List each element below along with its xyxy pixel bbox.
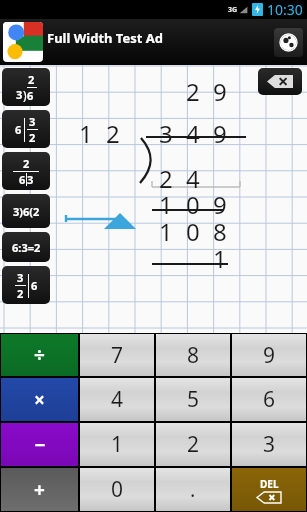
staticText: 7 bbox=[111, 341, 124, 370]
staticText: 3 bbox=[159, 117, 173, 150]
staticText: 1 bbox=[79, 117, 93, 150]
button[interactable]: Division style colon bbox=[2, 232, 50, 262]
staticText: 6:3=2 bbox=[12, 240, 41, 255]
button[interactable]: 8 bbox=[156, 334, 230, 376]
staticText: 4 bbox=[186, 117, 200, 150]
button[interactable]: 2 bbox=[156, 423, 230, 466]
staticText: 4 bbox=[111, 385, 124, 414]
staticText: ÷ bbox=[34, 342, 45, 368]
button[interactable]: operator ÷ bbox=[1, 334, 78, 376]
staticText: 3 bbox=[29, 114, 36, 129]
staticText: 8 bbox=[187, 341, 200, 370]
staticText: . bbox=[190, 476, 196, 503]
button[interactable]: 7 bbox=[80, 334, 154, 376]
button[interactable]: Open ad bbox=[274, 28, 303, 57]
button[interactable]: 5 bbox=[156, 378, 230, 421]
staticText: 3 bbox=[27, 172, 34, 187]
staticText: 2 bbox=[28, 72, 35, 87]
button[interactable]: 6 bbox=[232, 378, 306, 421]
staticText: Full Width Test Ad bbox=[47, 29, 163, 47]
button[interactable]: Division style bracket bbox=[2, 68, 50, 106]
staticText: 2 bbox=[17, 286, 24, 301]
staticText: 10:30 bbox=[267, 0, 303, 19]
staticText: 3 bbox=[263, 430, 276, 459]
staticText: 3G bbox=[228, 5, 238, 15]
staticText: 1 bbox=[213, 242, 227, 275]
staticText: 9 bbox=[213, 188, 227, 221]
staticText: 0 bbox=[111, 475, 124, 504]
button[interactable]: . bbox=[156, 468, 230, 511]
staticText: 2 bbox=[159, 162, 173, 195]
staticText: 8 bbox=[213, 215, 227, 248]
staticText: 9 bbox=[263, 341, 276, 370]
staticText: × bbox=[34, 387, 45, 413]
staticText: 6 bbox=[27, 88, 34, 103]
staticText: 9 bbox=[213, 75, 227, 108]
button[interactable]: Division style stacked bbox=[2, 152, 50, 190]
button[interactable]: Division style bar right bbox=[2, 110, 50, 148]
staticText: 9 bbox=[213, 117, 227, 150]
button[interactable]: 0 bbox=[80, 468, 154, 511]
staticText: 0 bbox=[186, 188, 200, 221]
staticText: 1 bbox=[111, 430, 124, 459]
staticText: 5 bbox=[187, 385, 200, 414]
button[interactable]: operator × bbox=[1, 378, 78, 421]
staticText: 1 bbox=[159, 188, 173, 221]
staticText: 2 bbox=[23, 156, 30, 171]
button[interactable]: Division style parenthesis bbox=[2, 194, 50, 228]
button[interactable]: Division style bar left bbox=[2, 266, 50, 304]
staticText: 6 bbox=[15, 122, 22, 137]
staticText: 6 bbox=[31, 278, 38, 293]
staticText: − bbox=[34, 432, 46, 458]
button[interactable]: 1 bbox=[80, 423, 154, 466]
button[interactable]: 9 bbox=[232, 334, 306, 376]
staticText: 3 bbox=[17, 270, 24, 285]
button[interactable]: 3 bbox=[232, 423, 306, 466]
staticText: 2 bbox=[106, 117, 120, 150]
staticText: 0 bbox=[186, 215, 200, 248]
staticText: 2 bbox=[187, 430, 200, 459]
staticText: 6 bbox=[263, 385, 276, 414]
button[interactable]: operator − bbox=[1, 423, 78, 466]
button[interactable]: Delete bbox=[232, 468, 306, 511]
button[interactable]: 4 bbox=[80, 378, 154, 421]
staticText: + bbox=[34, 477, 45, 503]
staticText: 2 bbox=[186, 75, 200, 108]
staticText: 1 bbox=[159, 215, 173, 248]
button[interactable]: operator + bbox=[1, 468, 78, 511]
staticText: ) bbox=[23, 87, 27, 103]
staticText: 2 bbox=[29, 130, 36, 145]
button[interactable]: Backspace bbox=[258, 68, 302, 95]
staticText: 3)6(2 bbox=[13, 204, 40, 219]
staticText: DEL bbox=[260, 477, 279, 491]
staticText: 6 bbox=[19, 172, 26, 187]
staticText: 4 bbox=[186, 162, 200, 195]
staticText: 3 bbox=[16, 87, 23, 102]
button[interactable]: Full Width Test Ad bbox=[0, 19, 307, 65]
